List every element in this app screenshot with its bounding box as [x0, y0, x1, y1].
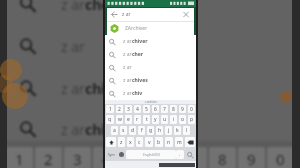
button[interactable]: 1	[106, 105, 114, 113]
staticText: g	[149, 127, 153, 134]
staticText: English(US)	[143, 153, 160, 157]
staticText: z	[120, 139, 123, 146]
button[interactable]: g	[147, 126, 154, 135]
staticText: 2	[44, 149, 53, 168]
staticText: e	[127, 116, 130, 123]
staticText: 4	[102, 149, 111, 168]
staticText: p	[190, 116, 194, 123]
button[interactable]: z ar	[105, 48, 196, 61]
staticText: ZArchiver	[125, 25, 148, 32]
button[interactable]: b	[155, 137, 163, 147]
staticText: f	[141, 127, 143, 134]
button[interactable]: t	[143, 115, 150, 124]
staticText: z ar	[123, 51, 132, 58]
button[interactable]: Shift	[106, 137, 116, 147]
button[interactable]: 3	[125, 105, 132, 113]
button[interactable]: 6	[152, 105, 159, 113]
button[interactable]: z ar	[105, 74, 196, 87]
button[interactable]: i	[170, 115, 177, 124]
staticText: 2	[118, 106, 121, 113]
button[interactable]: Backspace	[185, 137, 195, 147]
staticText: y	[154, 116, 157, 123]
button[interactable]: z ar	[105, 87, 196, 100]
button[interactable]: ZArchiver	[107, 22, 194, 35]
button[interactable]: s	[120, 126, 127, 135]
button[interactable]: Search	[184, 148, 196, 161]
staticText: s	[122, 127, 125, 134]
staticText: 0	[276, 149, 285, 168]
staticText: r	[136, 116, 139, 123]
button[interactable]: h	[156, 126, 163, 135]
staticText: i	[173, 116, 175, 123]
button[interactable]: f	[138, 126, 145, 135]
staticText: o	[181, 116, 185, 123]
staticText: l	[186, 127, 188, 134]
staticText: z ar	[123, 90, 132, 97]
staticText: z ar	[122, 11, 131, 18]
staticText: m	[177, 139, 182, 146]
button[interactable]: 0	[188, 105, 195, 113]
button[interactable]: English(US)	[126, 150, 176, 159]
button[interactable]: o	[179, 115, 186, 124]
staticText: chive	[85, 79, 122, 98]
button[interactable]: 5	[143, 105, 150, 113]
button[interactable]: v	[145, 137, 153, 147]
button[interactable]: 8	[170, 105, 177, 113]
staticText: chiver	[132, 38, 148, 45]
button[interactable]: r	[134, 115, 141, 124]
staticText: w	[118, 116, 122, 123]
button[interactable]: d	[129, 126, 136, 135]
button[interactable]: Search field	[107, 8, 194, 21]
staticText: 7	[163, 106, 166, 113]
staticText: v	[148, 139, 151, 146]
staticText: 4	[136, 106, 139, 113]
staticText: u	[163, 116, 167, 123]
staticText: z ar	[123, 77, 132, 84]
button[interactable]: c	[136, 137, 143, 147]
staticText: 8	[172, 106, 175, 113]
staticText: 0	[190, 106, 193, 113]
staticText: Sym	[108, 152, 115, 157]
staticText: z archiver	[145, 100, 157, 104]
button[interactable]: z ar	[105, 35, 196, 48]
button[interactable]: p	[188, 115, 195, 124]
button[interactable]: l	[183, 126, 190, 135]
button[interactable]: a	[111, 126, 118, 135]
staticText: 9	[247, 149, 256, 168]
staticText: c	[138, 139, 141, 146]
staticText: 5	[131, 149, 140, 168]
button[interactable]: Sym	[105, 148, 117, 161]
button[interactable]: m	[175, 137, 183, 147]
button[interactable]: j	[165, 126, 172, 135]
button[interactable]: 2	[116, 105, 123, 113]
button[interactable]: k	[174, 126, 181, 135]
button[interactable]: 9	[179, 105, 186, 113]
button[interactable]: 4	[134, 105, 141, 113]
button[interactable]: q	[106, 115, 114, 124]
staticText: z ar	[123, 38, 132, 45]
button[interactable]: Emoji	[117, 148, 126, 161]
staticText: k	[176, 127, 179, 134]
button[interactable]: e	[125, 115, 132, 124]
button[interactable]: n	[165, 137, 173, 147]
button[interactable]: 7	[161, 105, 168, 113]
button[interactable]: y	[152, 115, 159, 124]
staticText: d	[131, 127, 135, 134]
staticText: chives	[132, 77, 148, 84]
button[interactable]: u	[161, 115, 168, 124]
staticText: 1	[15, 149, 24, 168]
staticText: h	[158, 127, 162, 134]
staticText: a	[113, 127, 116, 134]
staticText: x	[129, 139, 132, 146]
staticText: 6	[160, 149, 169, 168]
staticText: j	[168, 127, 170, 134]
staticText: q	[108, 116, 112, 123]
button[interactable]: z	[118, 137, 125, 147]
button[interactable]: w	[116, 115, 123, 124]
staticText: z ar	[61, 79, 85, 98]
button[interactable]: z ar	[105, 61, 196, 74]
staticText: chiv	[85, 120, 114, 139]
button[interactable]: x	[127, 137, 134, 147]
button[interactable]: .	[176, 150, 184, 159]
staticText: 9	[181, 106, 184, 113]
